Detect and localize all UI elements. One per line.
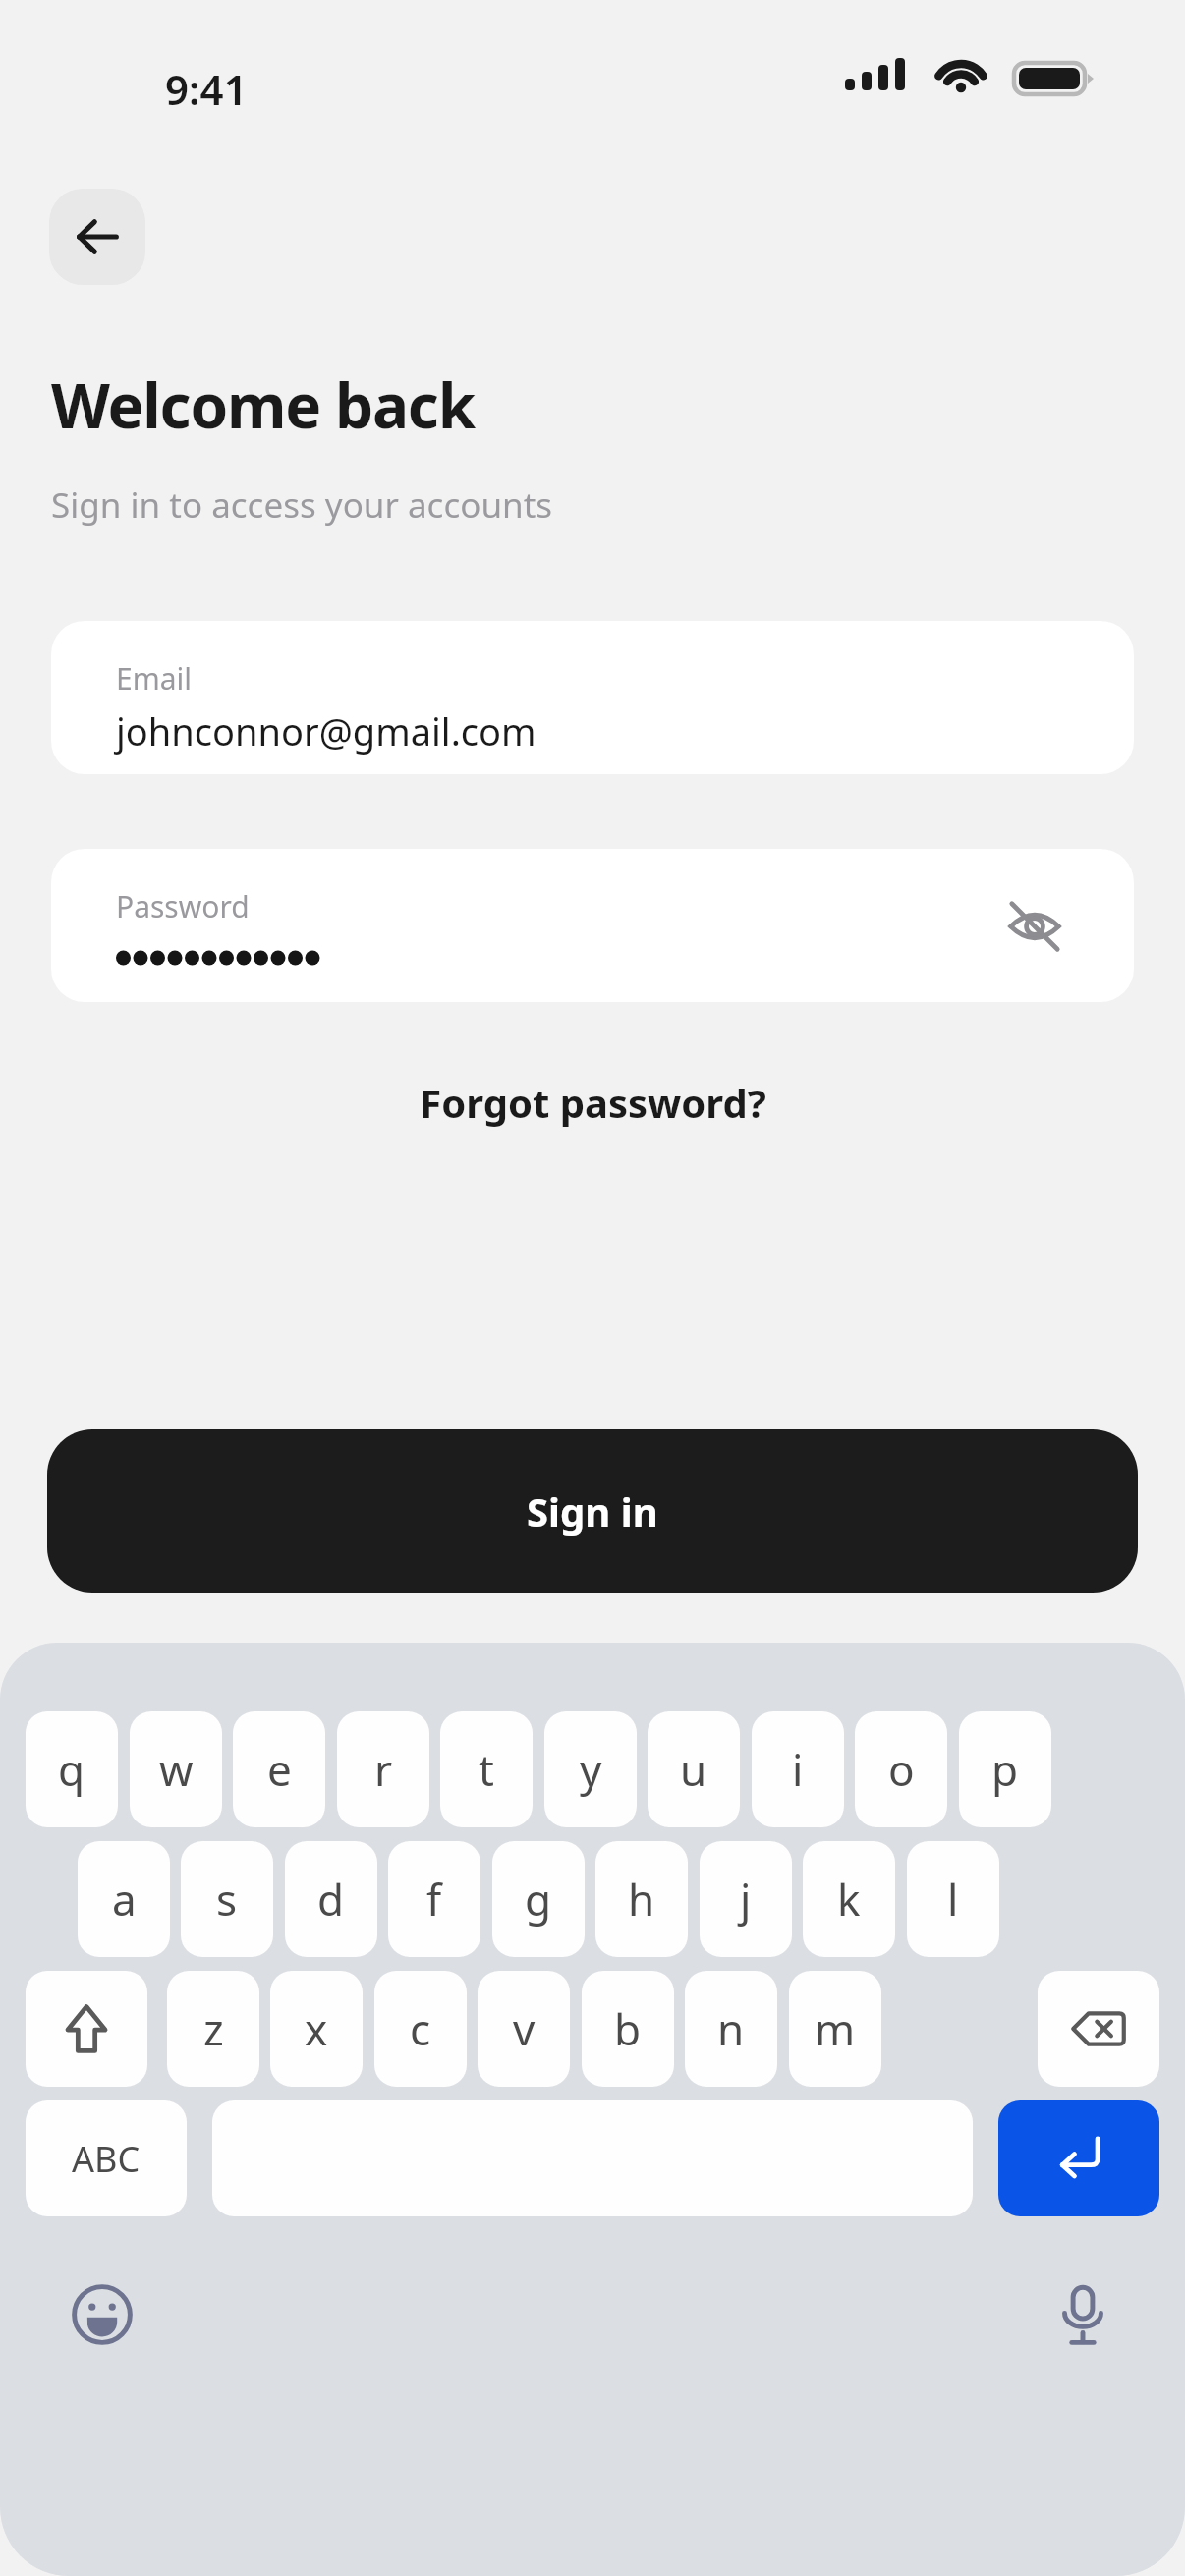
button[interactable]: Email: [51, 621, 1134, 774]
staticText: p: [991, 1740, 1019, 1799]
staticText: d: [317, 1870, 345, 1929]
button[interactable]: Emoji: [55, 2268, 149, 2362]
button[interactable]: c: [374, 1971, 467, 2087]
staticText: m: [815, 1999, 856, 2058]
button[interactable]: k: [803, 1841, 895, 1957]
staticText: johnconnor@gmail.com: [116, 705, 536, 756]
button[interactable]: l: [907, 1841, 999, 1957]
button[interactable]: f: [388, 1841, 480, 1957]
staticText: v: [513, 1999, 536, 2058]
button[interactable]: t: [440, 1711, 533, 1827]
staticText: ABC: [72, 2135, 141, 2183]
button[interactable]: e: [233, 1711, 325, 1827]
staticText: 9:41: [165, 61, 248, 117]
staticText: c: [410, 1999, 431, 2058]
staticText: x: [305, 1999, 328, 2058]
staticText: y: [580, 1740, 602, 1799]
button[interactable]: Show password: [994, 886, 1075, 967]
button[interactable]: Sign in: [47, 1429, 1138, 1593]
button[interactable]: Space: [212, 2100, 973, 2216]
button[interactable]: y: [544, 1711, 637, 1827]
staticText: r: [374, 1740, 393, 1799]
button[interactable]: g: [492, 1841, 585, 1957]
button[interactable]: j: [700, 1841, 792, 1957]
staticText: Sign in to access your accounts: [51, 481, 553, 529]
staticText: b: [614, 1999, 642, 2058]
staticText: h: [628, 1870, 655, 1929]
staticText: u: [680, 1740, 707, 1799]
button[interactable]: v: [478, 1971, 570, 2087]
staticText: l: [947, 1870, 959, 1929]
button[interactable]: q: [26, 1711, 118, 1827]
staticText: z: [203, 1999, 224, 2058]
button[interactable]: Enter: [998, 2100, 1159, 2216]
staticText: o: [888, 1740, 915, 1799]
staticText: Sign in: [527, 1484, 658, 1538]
button[interactable]: s: [181, 1841, 273, 1957]
staticText: a: [112, 1870, 137, 1929]
staticText: Welcome back: [51, 364, 475, 446]
button[interactable]: x: [270, 1971, 363, 2087]
button[interactable]: o: [855, 1711, 947, 1827]
staticText: e: [267, 1740, 292, 1799]
button[interactable]: p: [959, 1711, 1051, 1827]
staticText: w: [159, 1740, 194, 1799]
button[interactable]: b: [582, 1971, 674, 2087]
button[interactable]: h: [595, 1841, 688, 1957]
staticText: g: [525, 1870, 552, 1929]
staticText: s: [216, 1870, 238, 1929]
button[interactable]: Shift: [26, 1971, 147, 2087]
button[interactable]: ABC: [26, 2100, 187, 2216]
staticText: n: [717, 1999, 745, 2058]
button[interactable]: z: [167, 1971, 259, 2087]
button[interactable]: r: [337, 1711, 429, 1827]
button[interactable]: m: [789, 1971, 881, 2087]
button[interactable]: a: [78, 1841, 170, 1957]
button[interactable]: Back: [49, 189, 145, 285]
staticText: Forgot password?: [420, 1076, 766, 1129]
staticText: q: [58, 1740, 85, 1799]
button[interactable]: u: [648, 1711, 740, 1827]
button[interactable]: w: [130, 1711, 222, 1827]
button[interactable]: Voice input: [1036, 2268, 1130, 2362]
staticText: k: [837, 1870, 861, 1929]
staticText: f: [426, 1870, 442, 1929]
staticText: Email: [116, 658, 193, 699]
button[interactable]: Password: [51, 849, 1134, 1002]
button[interactable]: n: [685, 1971, 777, 2087]
button[interactable]: Backspace: [1038, 1971, 1159, 2087]
staticText: j: [740, 1870, 752, 1929]
staticText: i: [792, 1740, 804, 1799]
button[interactable]: Forgot password?: [0, 1059, 1185, 1146]
staticText: t: [479, 1740, 494, 1799]
button[interactable]: i: [752, 1711, 844, 1827]
staticText: Password: [116, 886, 250, 926]
button[interactable]: d: [285, 1841, 377, 1957]
